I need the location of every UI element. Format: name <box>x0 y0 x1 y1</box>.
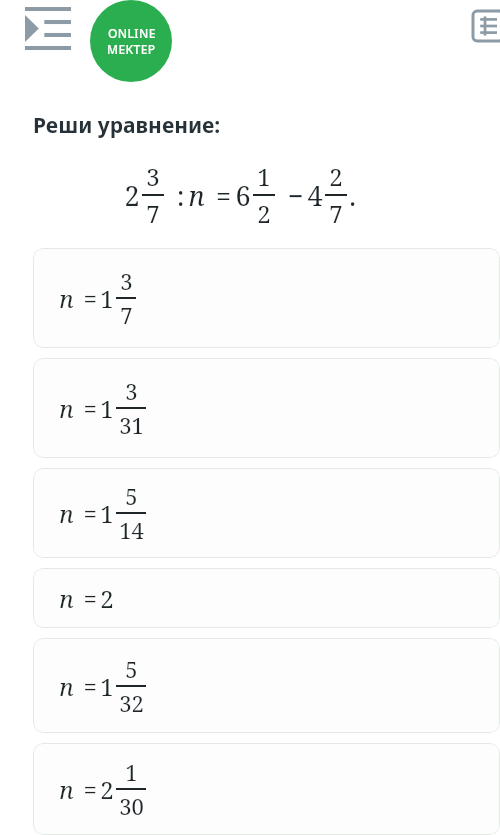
staticText: ONLINE <box>108 25 156 41</box>
staticText: − <box>277 177 307 214</box>
staticText: . <box>349 177 356 214</box>
staticText: 31 <box>119 410 144 440</box>
staticText: 7 <box>329 197 343 230</box>
staticText: = <box>74 773 100 806</box>
staticText: n <box>188 177 205 214</box>
staticText: 5 <box>125 654 138 684</box>
staticText: 2 <box>329 160 343 193</box>
staticText: 3 <box>120 266 133 296</box>
staticText: = <box>74 670 100 703</box>
staticText: 6 <box>235 177 251 214</box>
staticText: 5 <box>125 481 138 511</box>
button[interactable]: n <box>33 248 500 348</box>
staticText: MEKTEP <box>107 41 156 57</box>
staticText: 1 <box>125 757 138 787</box>
staticText: n <box>59 582 74 615</box>
staticText: Реши уравнение: <box>33 111 221 140</box>
staticText: 2 <box>124 177 140 214</box>
button[interactable]: Menu <box>25 7 71 50</box>
staticText: n <box>59 670 74 703</box>
staticText: = <box>74 582 100 615</box>
staticText: 1 <box>257 160 271 193</box>
staticText: 30 <box>119 791 144 821</box>
staticText: 32 <box>119 688 144 718</box>
button[interactable]: n <box>33 468 500 558</box>
staticText: 1 <box>100 670 114 703</box>
button[interactable]: n <box>33 743 500 835</box>
staticText: 4 <box>307 177 323 214</box>
staticText: 1 <box>100 282 114 315</box>
button[interactable]: Tasks grid <box>473 11 500 41</box>
staticText: 2 <box>100 582 114 615</box>
staticText: : <box>166 177 188 214</box>
button[interactable]: n <box>33 638 500 733</box>
button[interactable]: n <box>33 358 500 458</box>
staticText: n <box>59 773 74 806</box>
staticText: 3 <box>146 160 160 193</box>
staticText: = <box>74 282 100 315</box>
staticText: 1 <box>100 392 114 425</box>
staticText: n <box>59 497 74 530</box>
staticText: 14 <box>119 515 144 545</box>
staticText: = <box>74 497 100 530</box>
staticText: = <box>205 177 235 214</box>
staticText: 7 <box>146 197 160 230</box>
button[interactable]: Online Mektep home <box>90 0 172 82</box>
staticText: 2 <box>257 197 271 230</box>
staticText: n <box>59 282 74 315</box>
staticText: = <box>74 392 100 425</box>
staticText: n <box>59 392 74 425</box>
button[interactable]: n <box>33 568 500 628</box>
staticText: 1 <box>100 497 114 530</box>
staticText: 2 <box>100 773 114 806</box>
staticText: 3 <box>125 376 138 406</box>
staticText: 7 <box>120 300 133 330</box>
